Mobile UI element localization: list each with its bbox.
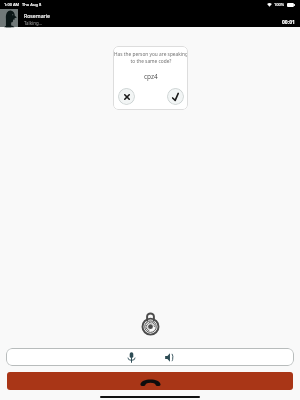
button[interactable]: Accept bbox=[167, 88, 184, 105]
button[interactable]: Contact avatar bbox=[0, 9, 18, 27]
staticText: Has the person you are speaking to the s… bbox=[113, 51, 188, 65]
staticText: Thu Aug 8 bbox=[22, 2, 42, 7]
staticText: Rosemarie bbox=[24, 12, 50, 19]
button[interactable]: End call bbox=[7, 372, 293, 390]
staticText: Talking... bbox=[24, 20, 43, 26]
button[interactable]: Mute microphone bbox=[121, 349, 141, 365]
staticText: cpz4 bbox=[144, 72, 158, 81]
button[interactable]: Speaker bbox=[159, 349, 179, 365]
staticText: 1:00 AM bbox=[4, 2, 20, 7]
staticText: 00:01 bbox=[282, 19, 295, 26]
button[interactable]: Reject bbox=[118, 88, 135, 105]
staticText: 100% bbox=[274, 2, 285, 7]
